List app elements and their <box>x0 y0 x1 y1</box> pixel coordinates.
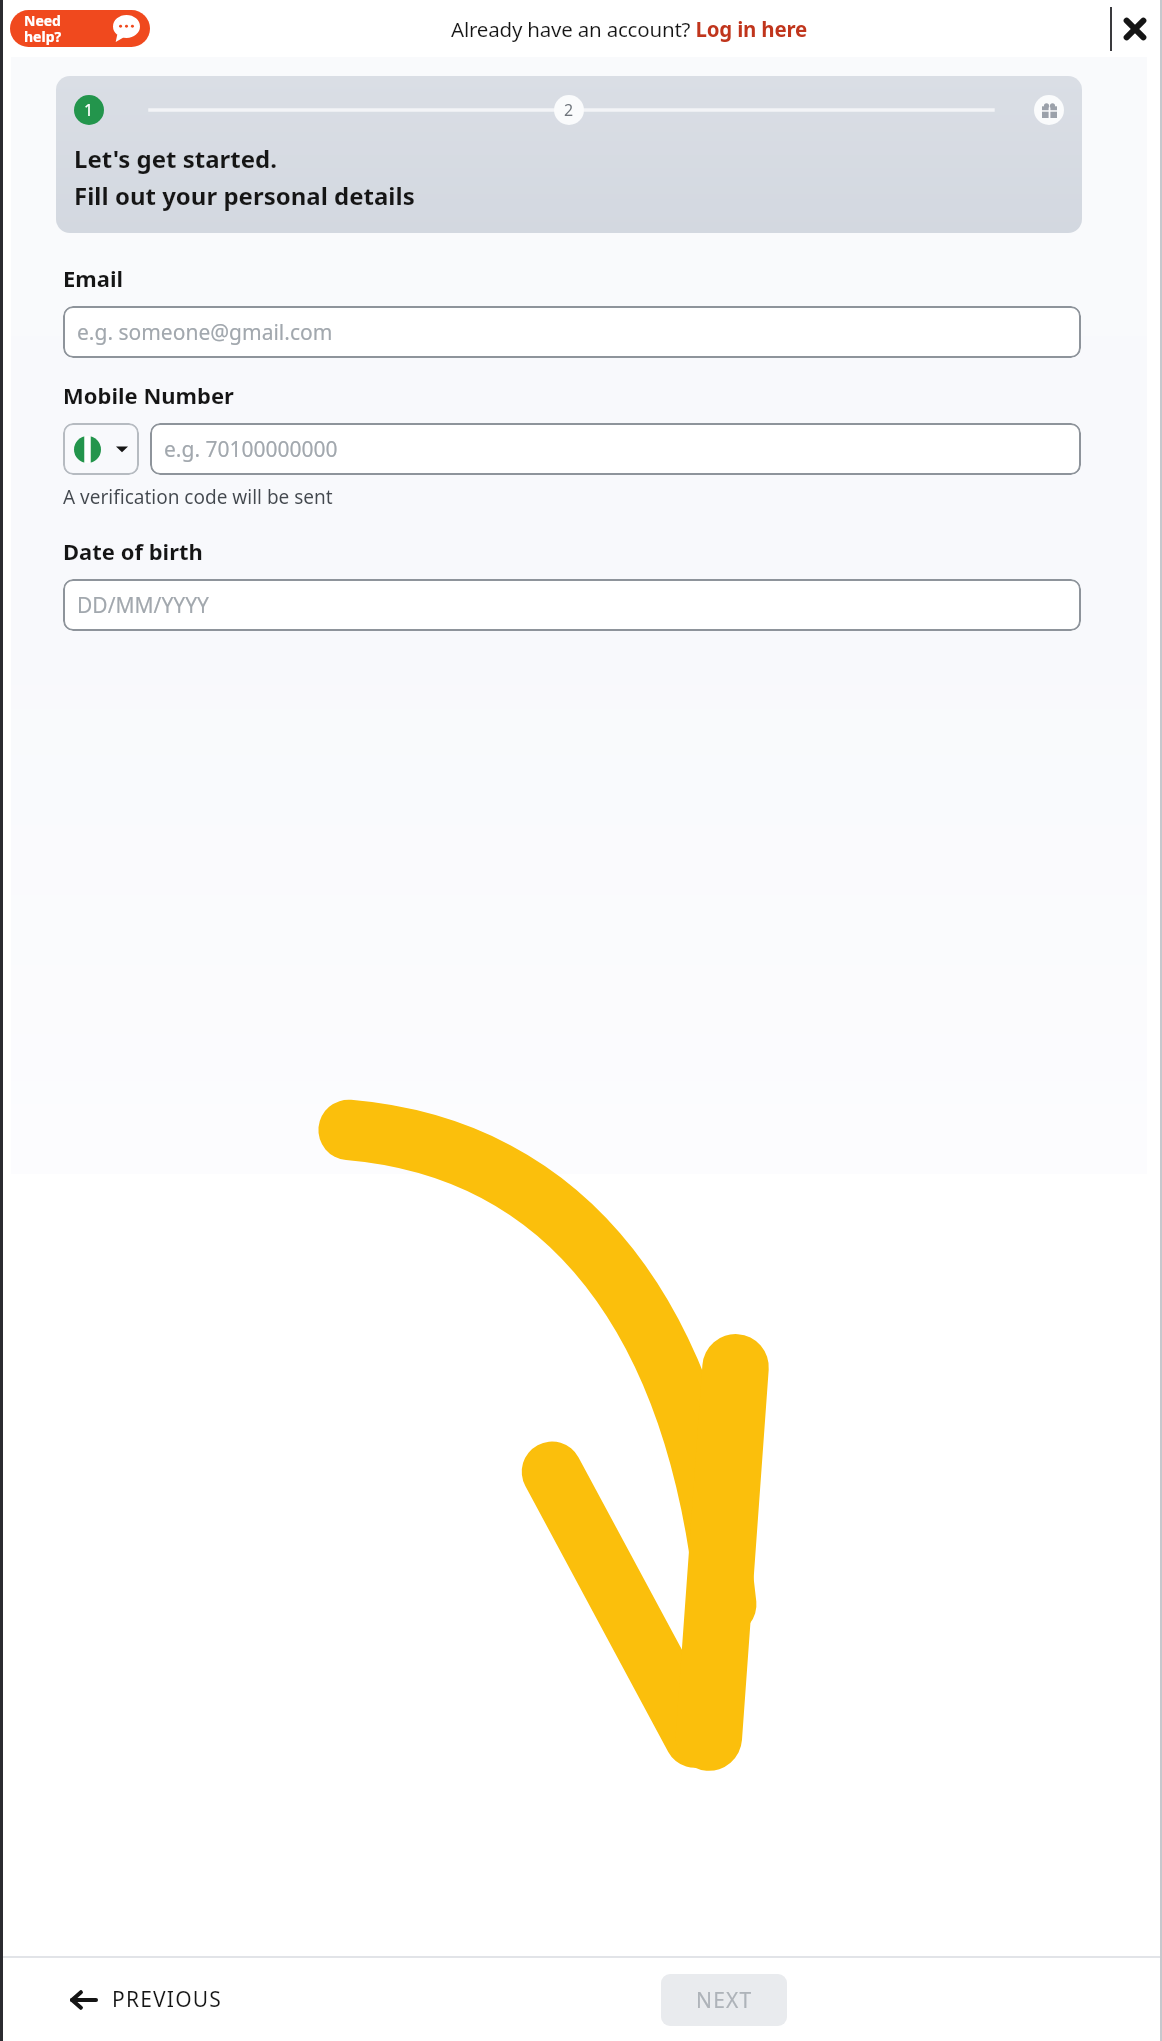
staticText: A verification code will be sent <box>63 484 333 510</box>
staticText: Mobile Number <box>63 380 234 410</box>
button[interactable]: NEXT <box>661 1974 787 2026</box>
button[interactable]: Already have an account? Log in here <box>447 9 812 49</box>
staticText: Email <box>63 263 124 293</box>
staticText: Already have an account? Log in here <box>451 15 808 43</box>
button[interactable]: Select country code <box>63 423 139 475</box>
staticText: Fill out your personal details <box>74 179 415 212</box>
button[interactable]: e.g. 70100000000 <box>150 423 1081 475</box>
staticText: e.g. someone@gmail.com <box>77 318 333 347</box>
button[interactable]: e.g. someone@gmail.com <box>63 306 1081 358</box>
staticText: Date of birth <box>63 536 203 566</box>
staticText: 2 <box>564 99 574 121</box>
staticText: Let's get started. <box>74 142 277 175</box>
button[interactable]: Close <box>1112 0 1158 57</box>
button[interactable]: Need help? <box>10 10 150 47</box>
button[interactable]: DD/MM/YYYY <box>63 579 1081 631</box>
staticText: DD/MM/YYYY <box>77 591 209 620</box>
staticText: 1 <box>84 99 94 121</box>
staticText: Need help? <box>24 11 62 46</box>
button[interactable]: 1 <box>56 76 1082 233</box>
staticText: e.g. 70100000000 <box>164 435 338 464</box>
staticText: NEXT <box>696 1986 753 2015</box>
button[interactable]: PREVIOUS <box>60 1975 233 2024</box>
staticText: PREVIOUS <box>112 1985 223 2014</box>
